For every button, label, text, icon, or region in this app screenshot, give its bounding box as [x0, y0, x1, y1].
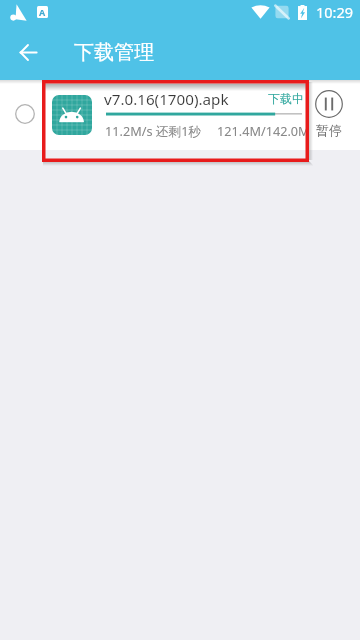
staticText: 下载管理	[74, 40, 154, 65]
staticText: 下载中	[268, 91, 304, 106]
staticText: 11.2M/s 还剩1秒	[105, 122, 202, 139]
button[interactable]: Select	[15, 104, 35, 124]
staticText: 10:29	[316, 2, 354, 22]
staticText: 121.4M/142.0M	[217, 122, 310, 139]
button[interactable]: Select	[0, 80, 360, 150]
staticText: v7.0.16(1700).apk	[104, 89, 229, 110]
staticText: 暂停	[316, 122, 342, 138]
button[interactable]: 暂停	[305, 80, 353, 150]
staticText: A	[39, 6, 46, 18]
button[interactable]: Back	[8, 32, 48, 72]
